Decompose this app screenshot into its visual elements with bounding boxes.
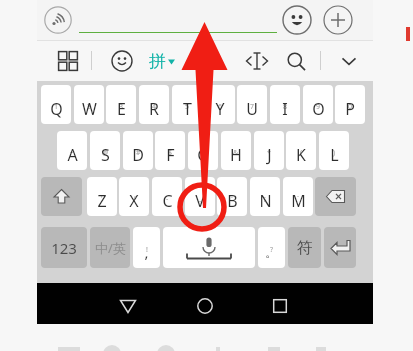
staticText: B	[227, 190, 238, 212]
button[interactable]: '	[87, 177, 117, 216]
staticText: F	[166, 144, 175, 166]
staticText: I	[282, 98, 288, 120]
staticText: ,	[144, 242, 149, 262]
staticText: C	[162, 190, 173, 212]
staticText: U	[246, 98, 258, 120]
button[interactable]: Back	[115, 293, 141, 319]
staticText: H	[230, 144, 242, 166]
staticText: X	[129, 190, 139, 212]
staticText: M	[291, 190, 306, 212]
staticText: ?	[270, 245, 274, 255]
button[interactable]: ?	[258, 227, 285, 268]
button[interactable]: :	[217, 177, 247, 216]
button[interactable]: Backspace	[315, 177, 356, 216]
button[interactable]: Emoticons	[111, 50, 133, 72]
button[interactable]: 拼	[149, 48, 175, 74]
staticText: 123	[51, 238, 77, 258]
staticText: Q	[50, 98, 63, 120]
button[interactable]: Move cursor	[245, 50, 269, 72]
button[interactable]: #	[123, 131, 153, 170]
staticText: /	[133, 194, 136, 204]
staticText: W	[82, 98, 97, 120]
staticText: (	[300, 148, 303, 158]
staticText: D	[132, 144, 144, 166]
staticText: $	[168, 148, 173, 158]
staticText: R	[149, 98, 159, 120]
staticText: K	[296, 144, 306, 166]
button[interactable]: 7	[237, 85, 267, 124]
button[interactable]: /	[119, 177, 149, 216]
staticText: P	[345, 98, 355, 120]
button[interactable]: 1	[41, 85, 71, 124]
button[interactable]: Keyboard layouts	[57, 50, 79, 72]
button[interactable]: 0	[335, 85, 365, 124]
button[interactable]: 123	[41, 227, 87, 268]
staticText: V	[195, 190, 205, 212]
button[interactable]: ~	[57, 131, 87, 170]
button[interactable]: @	[90, 131, 120, 170]
staticText: T	[183, 98, 192, 120]
staticText: 中/英	[95, 239, 126, 257]
staticText: 2	[87, 102, 92, 112]
staticText: ;	[264, 194, 266, 204]
staticText: G	[197, 144, 209, 166]
staticText: -	[166, 194, 169, 204]
staticText: !	[146, 245, 148, 255]
button[interactable]: 3	[106, 85, 136, 124]
button[interactable]: Hide keyboard	[337, 50, 361, 72]
button[interactable]: _	[185, 177, 215, 216]
staticText: 4	[152, 102, 157, 112]
staticText: Z	[97, 190, 107, 212]
staticText: O	[312, 98, 325, 120]
button[interactable]: $	[155, 131, 185, 170]
button[interactable]: Recent apps	[267, 293, 293, 319]
staticText: *	[267, 148, 271, 158]
staticText: _	[198, 194, 202, 204]
staticText: E	[117, 98, 126, 120]
staticText: 符	[297, 238, 313, 258]
button[interactable]: *	[254, 131, 284, 170]
button[interactable]: 2	[74, 85, 104, 124]
staticText: '	[101, 194, 103, 204]
button[interactable]: Space	[163, 227, 255, 268]
staticText: 3	[119, 102, 124, 112]
staticText: %	[200, 148, 206, 158]
staticText: #	[136, 148, 141, 158]
button[interactable]: Voice input	[44, 6, 72, 34]
button[interactable]: -	[152, 177, 182, 216]
button[interactable]: 符	[288, 227, 321, 268]
staticText: 1	[54, 102, 59, 112]
button[interactable]: %	[188, 131, 218, 170]
staticText: 0	[348, 102, 353, 112]
staticText: 6	[218, 102, 223, 112]
button[interactable]: `	[283, 177, 313, 216]
button[interactable]: &	[221, 131, 251, 170]
button[interactable]: Home	[192, 293, 218, 319]
button[interactable]: 中/英	[90, 227, 130, 268]
button[interactable]: 4	[139, 85, 169, 124]
button[interactable]: Add	[323, 5, 353, 35]
staticText: `	[297, 194, 299, 204]
button[interactable]: 5	[172, 85, 202, 124]
button[interactable]: 8	[270, 85, 300, 124]
button[interactable]: 6	[205, 85, 235, 124]
button[interactable]: Emoji	[282, 5, 312, 35]
button[interactable]: Shift	[41, 177, 82, 216]
button[interactable]: )	[319, 131, 349, 170]
button[interactable]: Search	[285, 50, 307, 72]
staticText: 7	[250, 102, 255, 112]
staticText: )	[333, 148, 336, 158]
button[interactable]: !	[133, 227, 160, 268]
button[interactable]: ;	[250, 177, 280, 216]
button[interactable]: Enter	[324, 227, 356, 268]
staticText: J	[267, 144, 272, 166]
staticText: S	[101, 144, 110, 166]
staticText: 5	[185, 102, 190, 112]
staticText: @	[102, 148, 109, 158]
button[interactable]: (	[286, 131, 316, 170]
staticText: Y	[215, 98, 225, 120]
button[interactable]: 9	[303, 85, 333, 124]
staticText: L	[330, 144, 339, 166]
staticText: 。	[265, 244, 278, 260]
staticText: ~	[70, 148, 75, 158]
